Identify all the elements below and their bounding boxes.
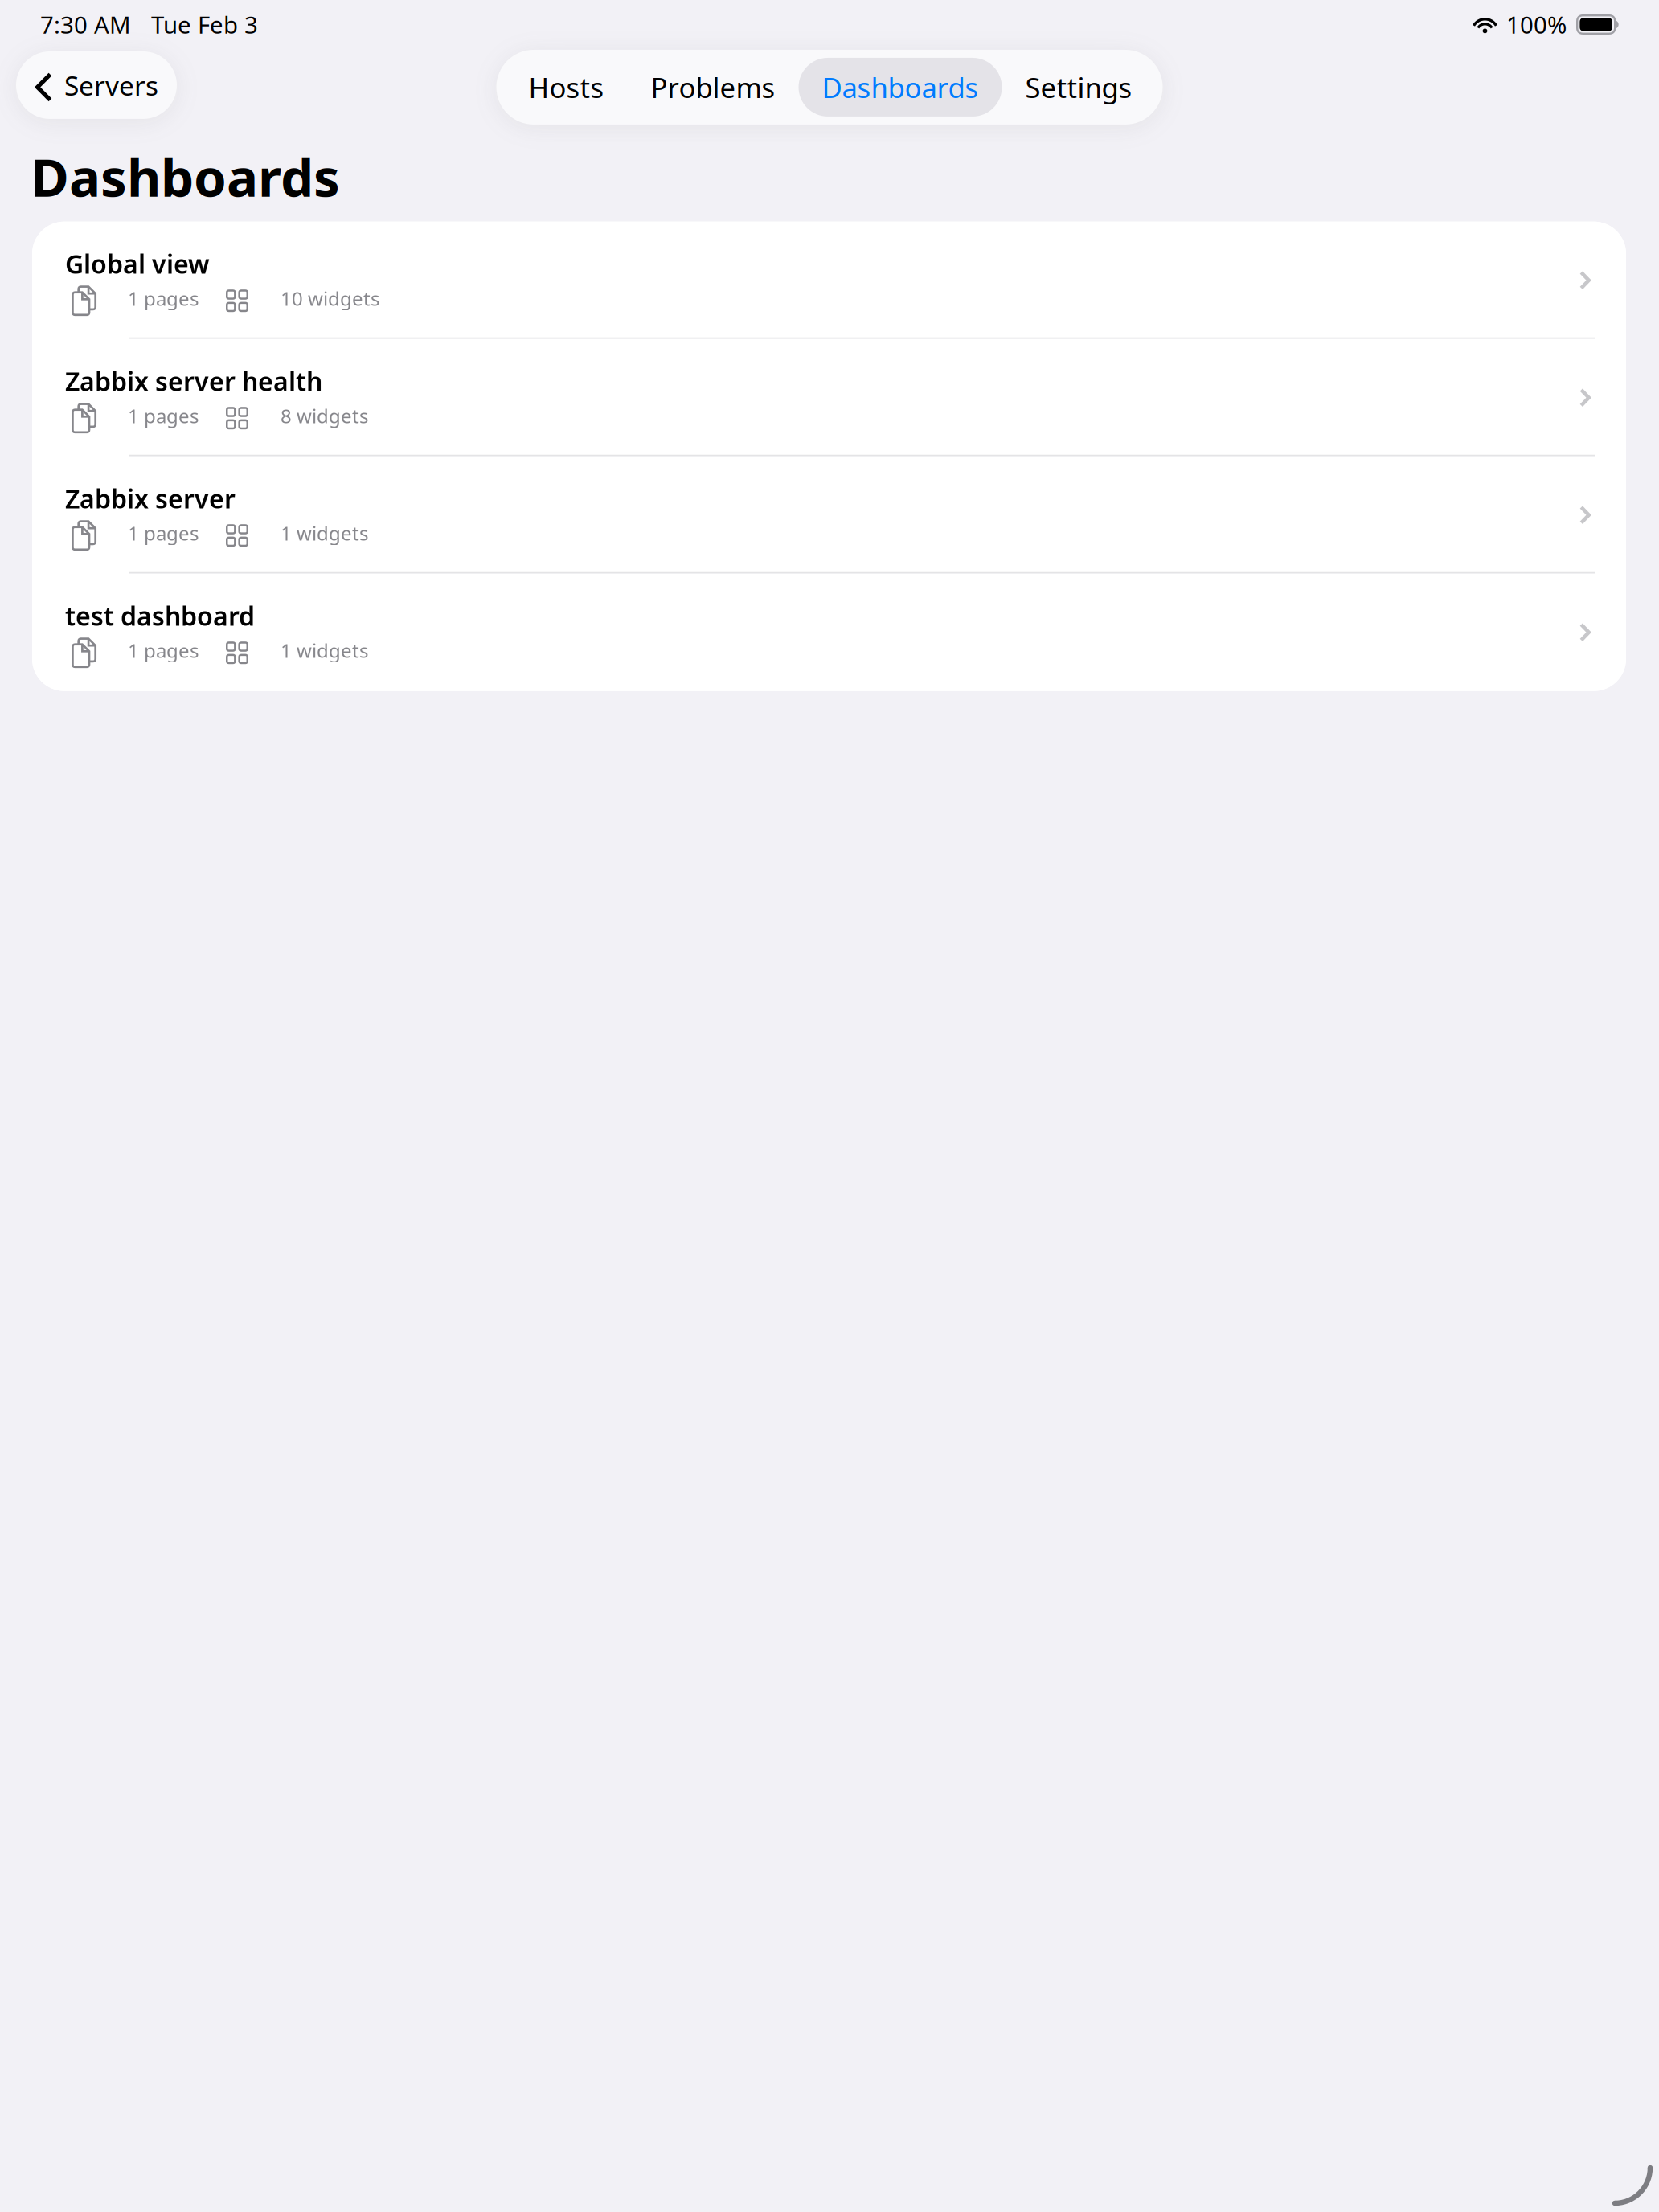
staticText: Hosts — [528, 69, 604, 106]
staticText: Settings — [1025, 69, 1132, 106]
button[interactable]: Settings — [1002, 58, 1155, 117]
staticText: 1 pages — [128, 638, 199, 663]
button[interactable]: Dashboards — [799, 58, 1002, 117]
staticText: test dashboard — [65, 599, 255, 633]
staticText: 10 widgets — [281, 286, 379, 311]
staticText: Problems — [651, 69, 775, 106]
button[interactable]: Zabbix server health — [32, 339, 1626, 456]
button[interactable]: Global view — [32, 222, 1626, 339]
button[interactable]: test dashboard — [32, 574, 1626, 691]
staticText: 1 pages — [128, 286, 199, 311]
staticText: 1 widgets — [281, 520, 368, 546]
staticText: 1 pages — [128, 520, 199, 546]
staticText: 1 widgets — [281, 638, 368, 663]
button[interactable]: Hosts — [505, 58, 627, 117]
staticText: Dashboards — [822, 69, 979, 106]
staticText: Global view — [65, 247, 210, 281]
button[interactable]: Zabbix server — [32, 456, 1626, 574]
button[interactable]: Back to Servers — [16, 51, 177, 119]
staticText: Servers — [64, 67, 158, 103]
staticText: 7:30 AM — [40, 9, 131, 40]
staticText: 100% — [1506, 9, 1567, 40]
staticText: Zabbix server — [65, 481, 236, 515]
staticText: Zabbix server health — [65, 364, 322, 398]
staticText: 8 widgets — [281, 403, 368, 428]
staticText: Dashboards — [31, 141, 340, 211]
button[interactable]: Problems — [627, 58, 799, 117]
staticText: 1 pages — [128, 403, 199, 428]
staticText: Tue Feb 3 — [151, 9, 258, 40]
